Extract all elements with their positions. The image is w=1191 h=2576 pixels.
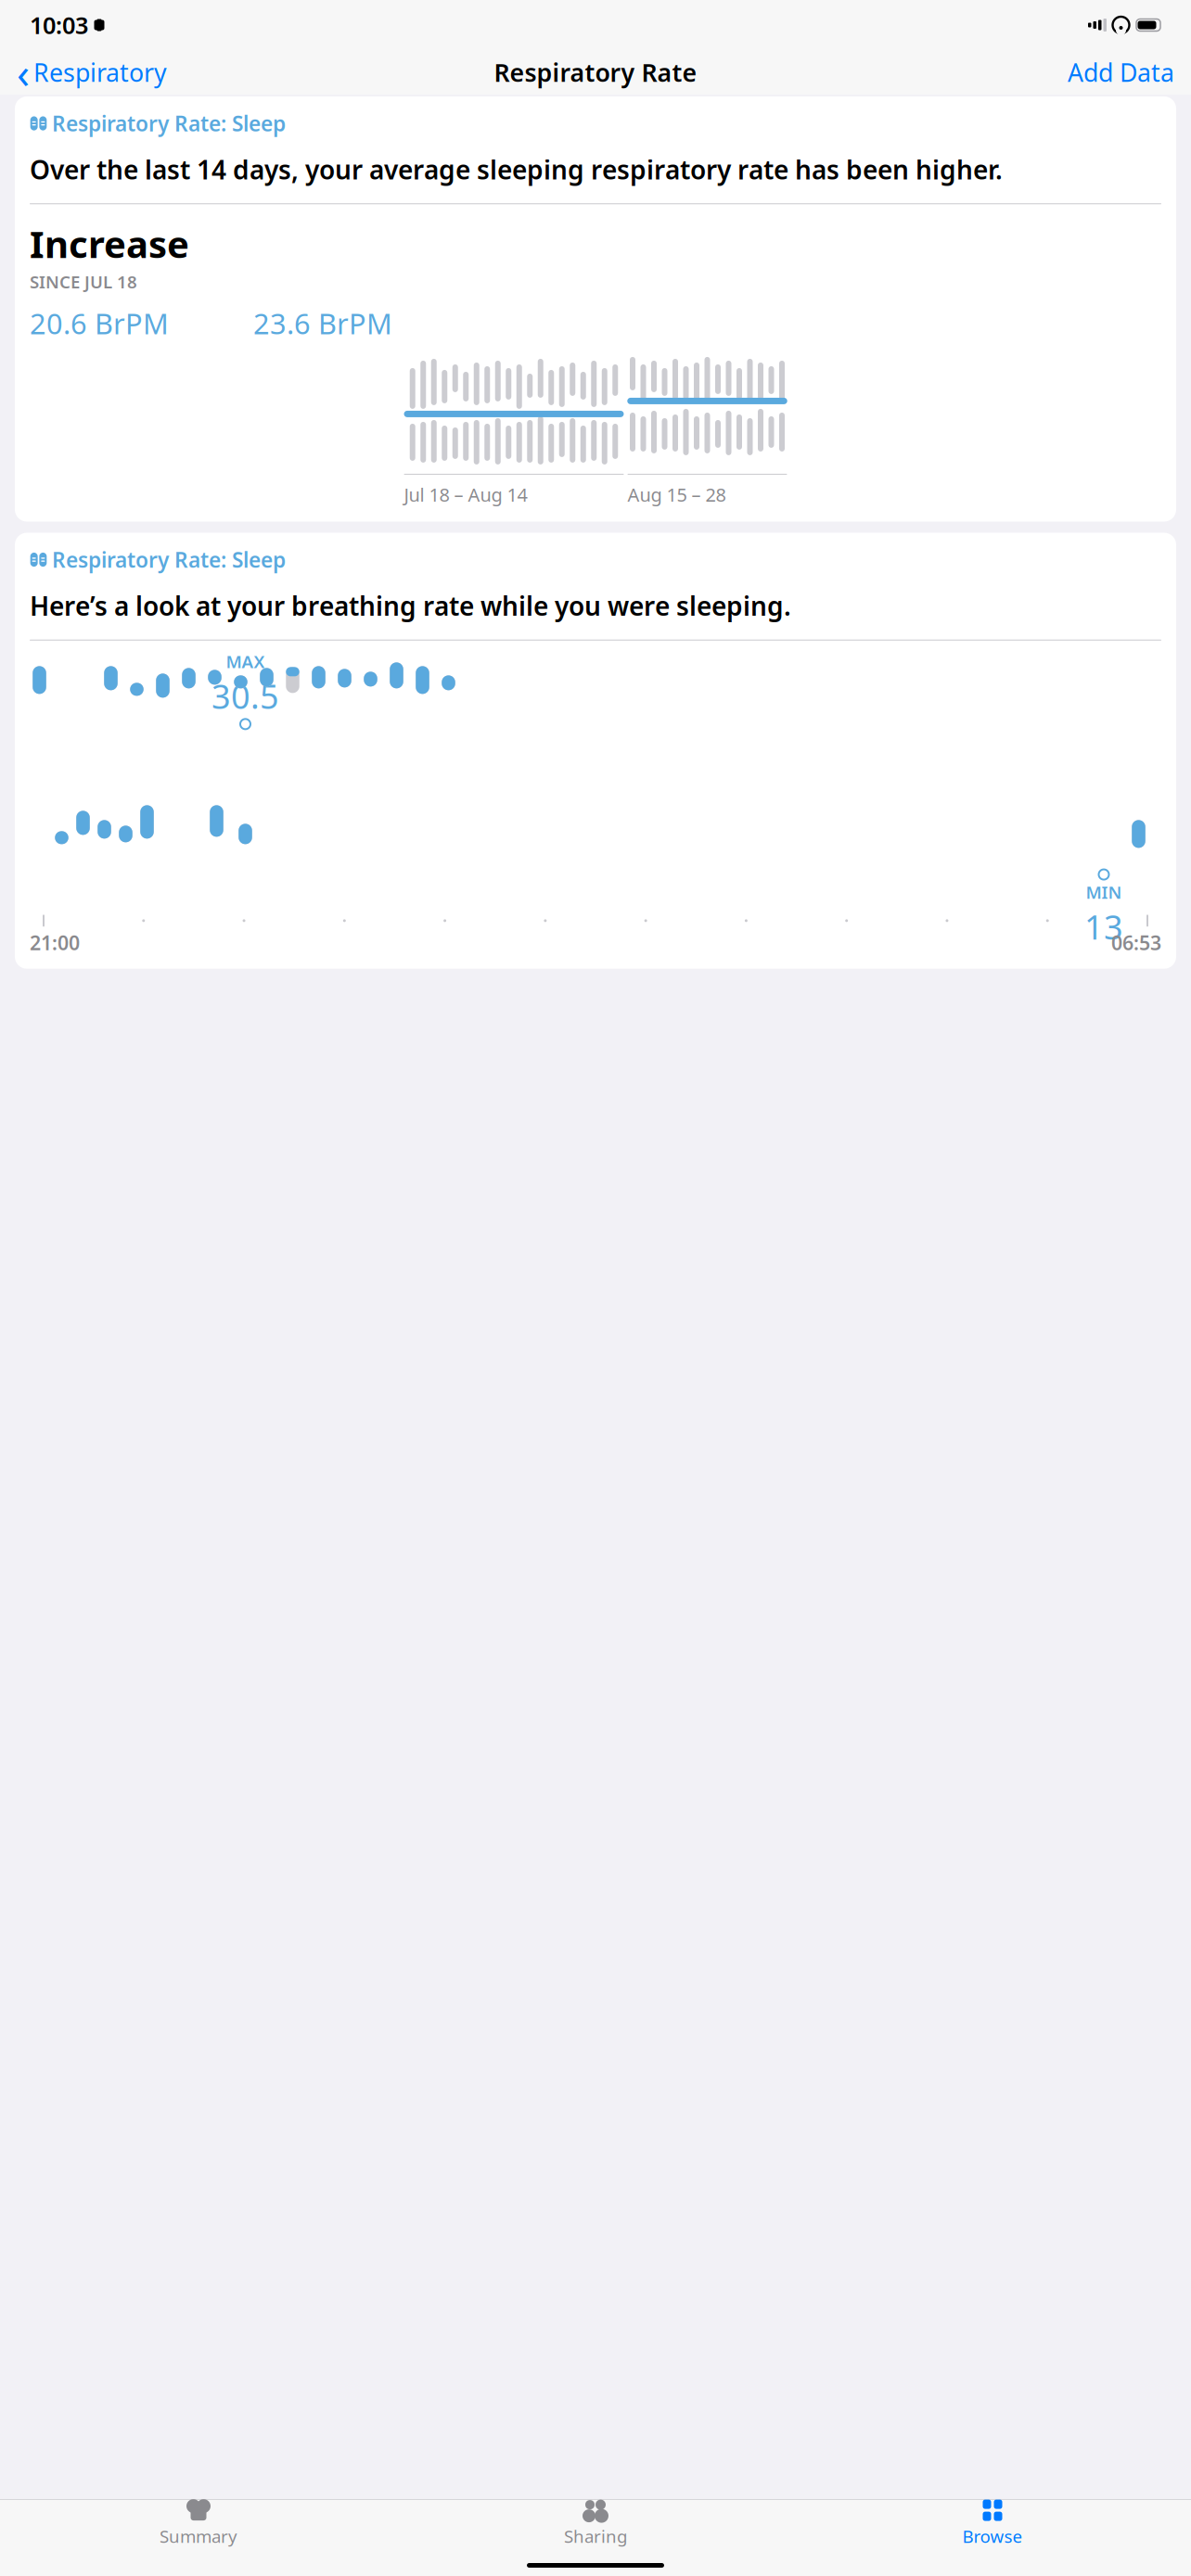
staticText: Here’s a look at your breathing rate whi… [30, 588, 791, 623]
staticText: Respiratory [33, 56, 167, 89]
staticText: Respiratory Rate: Sleep [52, 109, 286, 137]
staticText: MAX [226, 650, 265, 673]
staticText: 06:53 [1111, 930, 1161, 956]
staticText: SINCE JUL 18 [30, 270, 137, 293]
staticText: Increase [30, 219, 189, 268]
staticText: Over the last 14 days, your average slee… [30, 152, 1003, 187]
button[interactable]: Sharing [397, 2493, 794, 2553]
staticText: 30.5 [211, 674, 279, 718]
staticText: Jul 18 – Aug 14 [404, 482, 527, 507]
staticText: 20.6 BrPM [30, 304, 169, 342]
staticText: Respiratory Rate: Sleep [52, 546, 286, 574]
staticText: Aug 15 – 28 [628, 482, 726, 507]
staticText: 23.6 BrPM [253, 304, 392, 342]
staticText: Summary [160, 2525, 237, 2548]
staticText: Respiratory Rate [494, 56, 697, 89]
staticText: MIN [1086, 881, 1122, 904]
button[interactable]: Add Data [1058, 52, 1184, 93]
staticText: 21:00 [30, 930, 80, 956]
button[interactable]: Browse [794, 2493, 1191, 2553]
staticText: Add Data [1068, 56, 1174, 89]
staticText: 10:03 [30, 9, 88, 41]
staticText: Sharing [564, 2525, 627, 2548]
button[interactable]: Summary [0, 2493, 397, 2553]
staticText: 13 [1084, 904, 1123, 949]
staticText: Browse [962, 2525, 1023, 2548]
button[interactable]: ‹ [7, 52, 176, 93]
staticText: ‹ [17, 44, 30, 100]
